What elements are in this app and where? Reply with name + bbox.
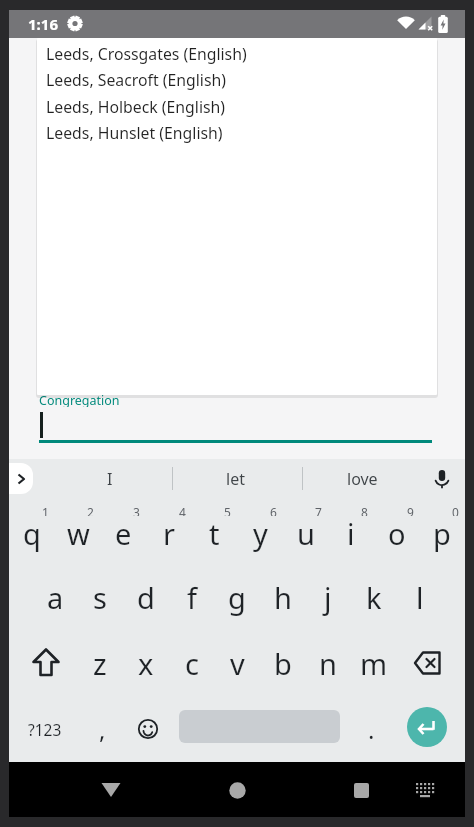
staticText: u (297, 514, 315, 553)
staticText: e (115, 514, 132, 553)
staticText: Congregation (39, 392, 120, 407)
staticText: g (228, 578, 246, 617)
button[interactable] (39, 390, 432, 443)
staticText: I (107, 468, 113, 490)
button[interactable] (9, 463, 33, 494)
staticText: ?123 (28, 719, 62, 740)
button[interactable]: k (351, 564, 397, 630)
staticText: . (368, 713, 375, 746)
staticText: 1 (42, 504, 49, 516)
staticText: c (185, 644, 199, 683)
button[interactable]: v (214, 630, 260, 696)
staticText: Leeds, Holbeck (English) (46, 96, 226, 118)
staticText: t (209, 514, 220, 553)
staticText: 0 (452, 504, 459, 516)
staticText: i (347, 514, 355, 553)
staticText: m (360, 644, 388, 683)
staticText: j (324, 578, 332, 617)
button[interactable]: o (374, 498, 420, 564)
button[interactable]: ?123 (22, 696, 68, 762)
staticText: n (319, 644, 337, 683)
button[interactable] (422, 459, 462, 498)
staticText: 7 (315, 504, 322, 516)
button[interactable]: , (79, 696, 125, 762)
button[interactable]: z (77, 630, 123, 696)
button[interactable]: q (9, 498, 55, 564)
staticText: 3 (133, 504, 140, 516)
staticText: Leeds, Hunslet (English) (46, 122, 223, 144)
staticText: 2 (87, 504, 94, 516)
staticText: 1:16 (28, 14, 58, 34)
staticText: Leeds, Seacroft (English) (46, 69, 226, 91)
button[interactable] (407, 707, 447, 747)
button[interactable]: n (305, 630, 351, 696)
button[interactable] (125, 696, 171, 762)
staticText: z (93, 644, 107, 683)
staticText: d (137, 578, 155, 617)
button[interactable] (217, 770, 257, 810)
staticText: r (163, 514, 175, 553)
staticText: 6 (270, 504, 277, 516)
button[interactable]: Leeds, Seacroft (English) (46, 66, 426, 93)
staticText: y (253, 514, 268, 553)
button[interactable]: a (32, 564, 78, 630)
staticText: 4 (179, 504, 186, 516)
staticText: let (226, 468, 245, 490)
staticText: w (67, 514, 90, 553)
staticText: v (230, 644, 245, 683)
button[interactable]: x (123, 630, 169, 696)
button[interactable] (18, 630, 74, 696)
button[interactable]: i (328, 498, 374, 564)
button[interactable]: Leeds, Crossgates (English) (46, 40, 426, 67)
staticText: f (187, 578, 197, 617)
button[interactable]: j (305, 564, 351, 630)
button[interactable]: d (123, 564, 169, 630)
button[interactable]: u (283, 498, 329, 564)
staticText: b (274, 644, 292, 683)
staticText: , (99, 713, 106, 746)
button[interactable]: l (397, 564, 443, 630)
button[interactable]: e (100, 498, 146, 564)
button[interactable]: y (237, 498, 283, 564)
staticText: s (93, 578, 107, 617)
button[interactable]: I (65, 459, 155, 498)
staticText: 5 (224, 504, 231, 516)
button[interactable]: m (351, 630, 397, 696)
button[interactable]: p (419, 498, 465, 564)
button[interactable]: Leeds, Holbeck (English) (46, 93, 426, 120)
button[interactable]: f (169, 564, 215, 630)
staticText: a (47, 578, 64, 617)
button[interactable] (91, 770, 131, 810)
staticText: o (388, 514, 406, 553)
button[interactable]: h (260, 564, 306, 630)
button[interactable] (400, 630, 456, 696)
button[interactable]: Leeds, Hunslet (English) (46, 119, 426, 146)
button[interactable] (405, 770, 445, 810)
button[interactable]: r (146, 498, 192, 564)
staticText: love (347, 468, 378, 490)
button[interactable]: t (191, 498, 237, 564)
button[interactable]: c (169, 630, 215, 696)
button[interactable]: b (260, 630, 306, 696)
button[interactable]: love (317, 459, 407, 498)
staticText: 9 (407, 504, 414, 516)
staticText: p (433, 514, 451, 553)
staticText: k (366, 578, 382, 617)
staticText: l (416, 578, 424, 617)
button[interactable] (341, 770, 381, 810)
button[interactable]: . (348, 696, 394, 762)
staticText: h (274, 578, 292, 617)
staticText: x (138, 644, 154, 683)
button[interactable]: let (190, 459, 280, 498)
staticText: q (23, 514, 41, 553)
button[interactable]: g (214, 564, 260, 630)
button[interactable]: s (77, 564, 123, 630)
staticText: 8 (361, 504, 368, 516)
staticText: Leeds, Crossgates (English) (46, 43, 247, 65)
button[interactable]: w (55, 498, 101, 564)
